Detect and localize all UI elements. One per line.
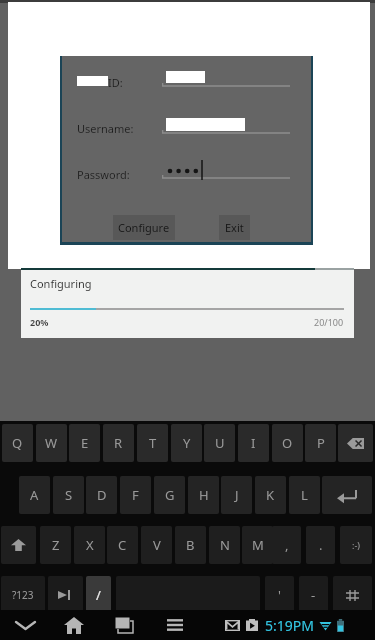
button[interactable]: B — [175, 526, 206, 564]
staticText: E — [81, 434, 89, 452]
button[interactable]: - — [299, 576, 328, 614]
staticText: , — [285, 536, 289, 554]
button[interactable]: X — [74, 526, 105, 564]
staticText: H — [199, 486, 209, 504]
button[interactable]: Z — [40, 526, 71, 564]
staticText: 5:19PM — [265, 616, 314, 635]
staticText: Password: — [77, 167, 130, 182]
staticText: A — [30, 486, 39, 504]
staticText: Y — [183, 434, 191, 452]
button[interactable]: Q — [2, 424, 33, 462]
button[interactable]: C — [107, 526, 138, 564]
button[interactable]: N — [209, 526, 240, 564]
button[interactable]: Emoji — [340, 526, 372, 564]
staticText: S — [65, 486, 73, 504]
button[interactable]: H — [188, 476, 219, 514]
staticText: M — [252, 536, 264, 554]
staticText: W — [45, 434, 58, 452]
button[interactable]: R — [103, 424, 134, 462]
button[interactable] — [116, 576, 260, 614]
button[interactable]: W — [36, 424, 67, 462]
button[interactable]: ?123 — [1, 576, 45, 614]
button[interactable]: Menu — [155, 610, 195, 640]
button[interactable]: Configure — [113, 215, 175, 240]
button[interactable]: Back — [5, 610, 45, 640]
button[interactable]: L — [289, 476, 320, 514]
staticText: . — [319, 536, 323, 554]
staticText: ID: — [108, 75, 123, 90]
staticText: N — [220, 536, 230, 554]
staticText: 20% — [30, 316, 49, 328]
staticText: V — [153, 536, 161, 554]
staticText: R — [114, 434, 123, 452]
button[interactable]: I — [238, 424, 269, 462]
button[interactable]: J — [221, 476, 252, 514]
staticText: Z — [52, 536, 60, 554]
staticText: I — [251, 434, 256, 452]
button[interactable]: F — [120, 476, 151, 514]
button[interactable]: Recent apps — [104, 610, 144, 640]
staticText: ' — [278, 586, 281, 604]
button[interactable]: P — [305, 424, 336, 462]
button[interactable]: Shift — [1, 526, 36, 564]
staticText: - — [311, 586, 316, 604]
staticText: T — [149, 434, 157, 452]
staticText: Configure — [118, 220, 170, 235]
staticText: ?123 — [12, 588, 34, 602]
button[interactable]: Tab — [48, 576, 83, 614]
staticText: C — [118, 536, 127, 554]
button[interactable]: K — [255, 476, 286, 514]
staticText: B — [186, 536, 195, 554]
button[interactable]: D — [86, 476, 117, 514]
staticText: :-) — [352, 539, 361, 551]
button[interactable]: G — [154, 476, 185, 514]
button[interactable]: . — [306, 526, 335, 564]
staticText: Configuring — [30, 276, 92, 291]
button[interactable]: A — [19, 476, 50, 514]
button[interactable]: T — [137, 424, 168, 462]
button[interactable]: Backspace — [338, 424, 373, 462]
staticText: / — [96, 586, 101, 604]
staticText: Username: — [77, 121, 134, 136]
button[interactable]: S — [53, 476, 84, 514]
button[interactable]: Home — [54, 610, 94, 640]
staticText: Q — [12, 434, 23, 452]
staticText: G — [165, 486, 175, 504]
button[interactable]: Y — [171, 424, 202, 462]
button[interactable]: Exit — [219, 215, 250, 240]
button[interactable]: Keyboard settings — [333, 576, 372, 614]
button[interactable]: M — [242, 526, 273, 564]
staticText: Exit — [225, 220, 244, 235]
staticText: K — [266, 486, 275, 504]
staticText: X — [86, 536, 94, 554]
button[interactable]: E — [69, 424, 100, 462]
button[interactable]: / — [86, 576, 111, 614]
button[interactable]: U — [204, 424, 235, 462]
button[interactable]: ' — [265, 576, 294, 614]
staticText: 20/100 — [314, 316, 344, 328]
staticText: F — [132, 486, 139, 504]
button[interactable]: Enter — [322, 476, 372, 514]
button[interactable]: V — [141, 526, 172, 564]
staticText: D — [97, 486, 107, 504]
staticText: L — [301, 486, 308, 504]
staticText: J — [235, 486, 239, 504]
staticText: O — [282, 434, 293, 452]
staticText: P — [317, 434, 325, 452]
staticText: U — [215, 434, 225, 452]
button[interactable]: , — [272, 526, 301, 564]
button[interactable]: O — [272, 424, 303, 462]
